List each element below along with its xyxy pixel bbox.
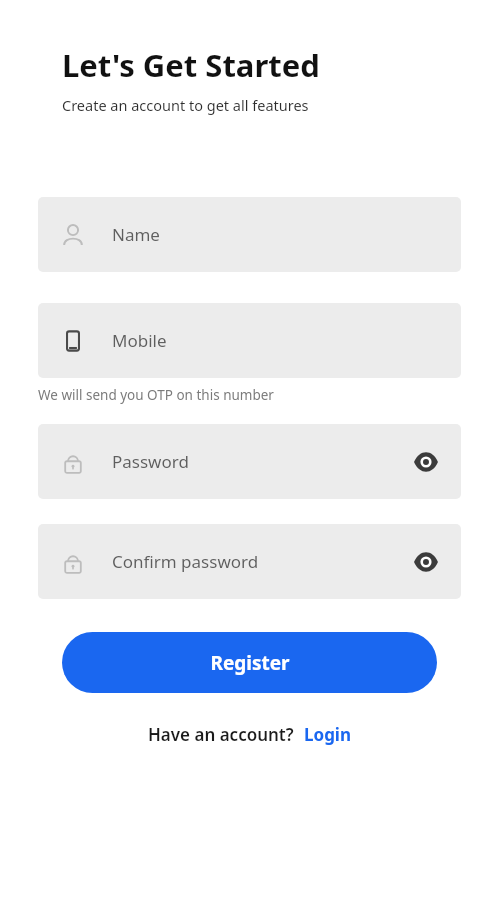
button[interactable]: Mobile	[38, 303, 461, 378]
button[interactable]: Confirm password	[38, 524, 461, 599]
staticText: Mobile	[112, 329, 443, 352]
other: Show password	[413, 449, 439, 475]
button[interactable]: Register	[62, 632, 437, 693]
button[interactable]: Show password	[409, 445, 443, 479]
staticText: Name	[112, 223, 443, 246]
button[interactable]: Password	[38, 424, 461, 499]
staticText: Let's Get Started	[62, 44, 320, 86]
button[interactable]: Login	[304, 723, 352, 746]
staticText: Have an account?	[148, 723, 294, 746]
staticText: Login	[304, 723, 352, 746]
staticText: Confirm password	[112, 550, 409, 573]
staticText: Create an account to get all features	[62, 95, 309, 115]
button[interactable]: Name	[38, 197, 461, 272]
staticText: Register	[210, 650, 290, 676]
button[interactable]: Show password	[409, 545, 443, 579]
staticText: Password	[112, 450, 409, 473]
other: Show password	[413, 549, 439, 575]
staticText: We will send you OTP on this number	[38, 386, 274, 404]
